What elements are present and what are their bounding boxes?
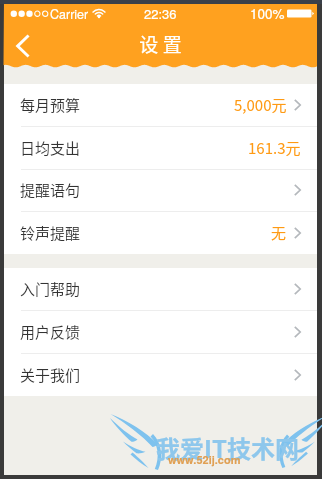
- staticText: 无: [271, 222, 287, 244]
- staticText: 用户反馈: [20, 321, 81, 343]
- staticText: 入门帮助: [20, 278, 81, 300]
- staticText: 提醒语句: [20, 179, 81, 201]
- staticText: 161.3元: [248, 137, 301, 159]
- staticText: 铃声提醒: [20, 222, 81, 244]
- staticText: 100%: [250, 4, 285, 23]
- button[interactable]: 每月预算: [4, 84, 317, 126]
- button[interactable]: 日均支出: [4, 126, 317, 169]
- staticText: 关于我们: [20, 364, 81, 386]
- staticText: www.52ij.com: [168, 452, 241, 468]
- button[interactable]: 提醒语句: [4, 169, 317, 211]
- button[interactable]: 铃声提醒: [4, 211, 317, 254]
- staticText: 我爱IT技术网: [156, 430, 299, 465]
- staticText: 每月预算: [20, 94, 81, 116]
- staticText: 日均支出: [20, 137, 81, 159]
- button[interactable]: 关于我们: [4, 353, 317, 396]
- button[interactable]: 用户反馈: [4, 310, 317, 353]
- button[interactable]: 入门帮助: [4, 268, 317, 310]
- staticText: Carrier: [50, 5, 89, 23]
- button[interactable]: Back: [8, 28, 40, 60]
- staticText: 设 置: [139, 30, 182, 58]
- staticText: 5,000元: [234, 94, 287, 116]
- staticText: 22:36: [144, 4, 177, 23]
